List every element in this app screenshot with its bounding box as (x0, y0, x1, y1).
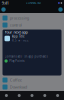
button[interactable]: Search (13, 91, 26, 100)
button[interactable]: Downloads (0, 91, 13, 100)
staticText: Play Points (9, 59, 24, 63)
staticText: 9:41 (2, 0, 9, 6)
button[interactable]: Home (26, 91, 38, 100)
button[interactable]: control (2, 21, 61, 28)
staticText: processing (10, 15, 29, 21)
button[interactable]: Profile (51, 91, 64, 100)
button[interactable]: Coffee (2, 76, 61, 83)
staticText: App Title (12, 35, 25, 38)
staticText: 4.5 ★ · Free (12, 39, 29, 42)
button[interactable]: processing (2, 14, 61, 21)
staticText: Your next app (4, 29, 27, 35)
button[interactable]: Download (2, 83, 61, 90)
staticText: Coffee (10, 77, 22, 83)
staticText: Contains ads · In-app purchases (4, 55, 47, 58)
button[interactable]: Library (38, 91, 51, 100)
staticText: Download (10, 84, 27, 90)
staticText: control (10, 22, 22, 28)
staticText: CONNECTED (26, 1, 41, 5)
